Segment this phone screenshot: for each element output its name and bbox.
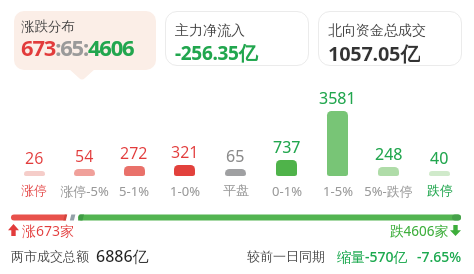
staticText: 272: [120, 142, 148, 164]
staticText: 涨673家: [22, 221, 75, 240]
staticText: 涨跌分布: [21, 18, 75, 35]
staticText: 54: [75, 145, 94, 167]
button[interactable]: 涨跌分布: [14, 11, 156, 70]
staticText: 跌停: [427, 182, 453, 198]
staticText: 65: [226, 145, 245, 167]
button[interactable]: 北向资金总成交: [318, 11, 462, 66]
staticText: 321: [171, 141, 199, 163]
staticText: -7.65%: [417, 247, 462, 266]
staticText: 737: [273, 136, 301, 158]
staticText: 0-1%: [272, 182, 302, 200]
staticText: 较前一日同期: [247, 248, 325, 264]
staticText: 涨停-5%: [60, 182, 109, 200]
staticText: 缩量-570亿: [337, 247, 408, 266]
staticText: 5%-跌停: [364, 182, 413, 200]
staticText: 3581: [319, 87, 356, 109]
staticText: 1-5%: [323, 182, 353, 200]
staticText: 平盘: [223, 182, 249, 198]
staticText: 5-1%: [119, 182, 149, 200]
staticText: 两市成交总额: [11, 248, 89, 264]
staticText: 北向资金总成交: [328, 22, 426, 40]
staticText: 1-0%: [170, 182, 200, 200]
staticText: 主力净流入: [175, 22, 245, 40]
staticText: -256.35亿: [175, 40, 258, 66]
staticText: 673:65:4606: [21, 32, 134, 62]
staticText: 涨停: [21, 182, 47, 198]
staticText: 跌4606家: [390, 222, 448, 240]
staticText: 248: [375, 143, 403, 165]
staticText: 40: [430, 147, 449, 169]
staticText: 6886亿: [96, 245, 149, 267]
staticText: 1057.05亿: [328, 40, 420, 66]
button[interactable]: 主力净流入: [165, 11, 309, 66]
staticText: 26: [25, 147, 44, 169]
